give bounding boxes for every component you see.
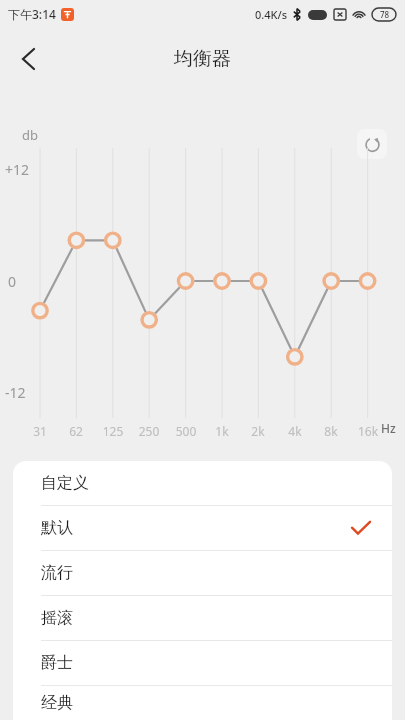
- button[interactable]: 自定义: [13, 461, 392, 505]
- button[interactable]: 摇滚: [13, 596, 392, 640]
- button[interactable]: 流行: [13, 551, 392, 595]
- staticText: Hz: [381, 420, 396, 436]
- staticText: 爵士: [41, 653, 73, 673]
- staticText: 8k: [309, 423, 353, 439]
- staticText: 4k: [273, 423, 317, 439]
- staticText: 0: [8, 272, 17, 291]
- staticText: +12: [5, 160, 30, 179]
- staticText: 62: [54, 423, 98, 439]
- staticText: 1k: [200, 423, 244, 439]
- staticText: 250: [127, 423, 171, 439]
- staticText: 31: [18, 423, 62, 439]
- staticText: 经典: [41, 693, 73, 713]
- staticText: 16k: [346, 423, 390, 439]
- staticText: 78: [380, 9, 390, 20]
- button[interactable]: 经典: [13, 686, 392, 720]
- staticText: 摇滚: [41, 608, 73, 628]
- button[interactable]: Reset: [357, 129, 387, 159]
- staticText: 自定义: [41, 473, 89, 493]
- staticText: 2k: [236, 423, 280, 439]
- staticText: db: [22, 126, 38, 144]
- staticText: 流行: [41, 563, 73, 583]
- staticText: 0.4K/s: [255, 7, 288, 22]
- staticText: -12: [5, 383, 26, 402]
- staticText: 下午3:14: [8, 6, 56, 22]
- staticText: 125: [91, 423, 135, 439]
- staticText: 均衡器: [174, 47, 231, 71]
- button[interactable]: 爵士: [13, 641, 392, 685]
- staticText: 500: [164, 423, 208, 439]
- staticText: 默认: [41, 518, 73, 538]
- button[interactable]: 默认: [13, 506, 392, 550]
- button[interactable]: Back: [6, 37, 50, 81]
